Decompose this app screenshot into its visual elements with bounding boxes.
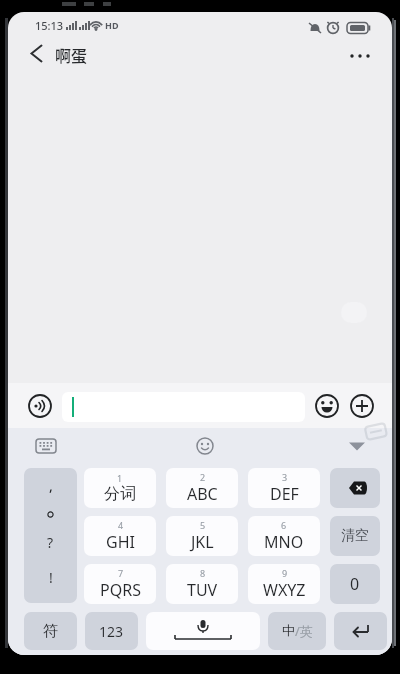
staticText: 啊蛋: [55, 43, 88, 66]
staticText: 清空: [341, 527, 369, 545]
staticText: 中: [282, 622, 295, 638]
staticText: HD: [105, 19, 119, 31]
staticText: 8: [200, 567, 206, 579]
staticText: 符: [43, 622, 58, 641]
staticText: 1: [117, 472, 123, 484]
button[interactable]: 清空: [330, 516, 380, 556]
staticText: 9: [282, 567, 288, 579]
staticText: ?: [47, 533, 54, 552]
button[interactable]: 6: [248, 516, 320, 556]
button[interactable]: 符: [24, 612, 77, 650]
button[interactable]: 3: [248, 468, 320, 508]
staticText: 2: [200, 471, 206, 483]
button[interactable]: [330, 468, 380, 508]
staticText: /英: [295, 622, 313, 640]
button[interactable]: 4: [84, 516, 156, 556]
staticText: 123: [99, 622, 124, 641]
button[interactable]: 0: [330, 564, 380, 604]
button[interactable]: [62, 392, 305, 422]
button[interactable]: 7: [84, 564, 156, 604]
staticText: 5: [200, 519, 206, 531]
button[interactable]: [22, 40, 50, 68]
button[interactable]: ,: [24, 468, 77, 603]
staticText: 7: [118, 567, 124, 579]
button[interactable]: [27, 393, 53, 419]
button[interactable]: 2: [166, 468, 238, 508]
staticText: 3: [282, 471, 288, 483]
staticText: !: [49, 568, 53, 587]
button[interactable]: [342, 38, 378, 70]
staticText: JKL: [191, 531, 214, 553]
button[interactable]: 123: [85, 612, 138, 650]
staticText: 0: [350, 573, 360, 595]
button[interactable]: 1: [84, 468, 156, 508]
button[interactable]: [34, 434, 60, 458]
staticText: WXYZ: [263, 579, 306, 601]
button[interactable]: 9: [248, 564, 320, 604]
staticText: ABC: [187, 483, 218, 505]
staticText: GHI: [106, 531, 135, 553]
staticText: TUV: [187, 579, 218, 601]
staticText: PQRS: [100, 579, 141, 601]
staticText: 6: [281, 519, 287, 531]
button[interactable]: [194, 435, 216, 457]
button[interactable]: 中: [268, 612, 326, 650]
staticText: ,: [49, 476, 53, 495]
staticText: 4: [118, 519, 124, 531]
button[interactable]: [146, 612, 260, 650]
button[interactable]: [349, 393, 375, 419]
staticText: MNO: [264, 531, 304, 553]
button[interactable]: [334, 612, 387, 650]
button[interactable]: 8: [166, 564, 238, 604]
staticText: 15:13: [35, 18, 64, 33]
staticText: DEF: [270, 483, 299, 505]
button[interactable]: [345, 439, 369, 455]
staticText: 分词: [104, 484, 136, 504]
button[interactable]: [314, 393, 340, 419]
button[interactable]: 5: [166, 516, 238, 556]
